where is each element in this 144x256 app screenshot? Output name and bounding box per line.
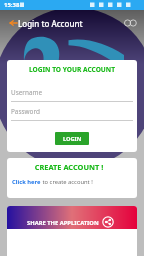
staticText: CREATE ACCOUNT !	[7, 162, 134, 172]
staticText: LOGIN TO YOUR ACCOUNT	[7, 65, 137, 74]
staticText: Username	[11, 88, 43, 97]
staticText: Login to Account	[18, 18, 83, 29]
staticText: Password	[11, 107, 40, 116]
staticText: Click here	[12, 178, 41, 186]
other: Share	[102, 216, 114, 228]
button[interactable]: Back	[0, 15, 20, 31]
button[interactable]: SHARE THE APPLICATION	[7, 206, 137, 229]
staticText: 15:38	[4, 1, 20, 9]
button[interactable]: More options	[124, 18, 137, 28]
button[interactable]: CREATE ACCOUNT !	[7, 158, 137, 198]
staticText: LOGIN	[63, 135, 82, 143]
staticText: SHARE THE APPLICATION	[27, 219, 99, 227]
button[interactable]: LOGIN	[55, 132, 89, 145]
staticText: to create account !	[41, 178, 93, 186]
